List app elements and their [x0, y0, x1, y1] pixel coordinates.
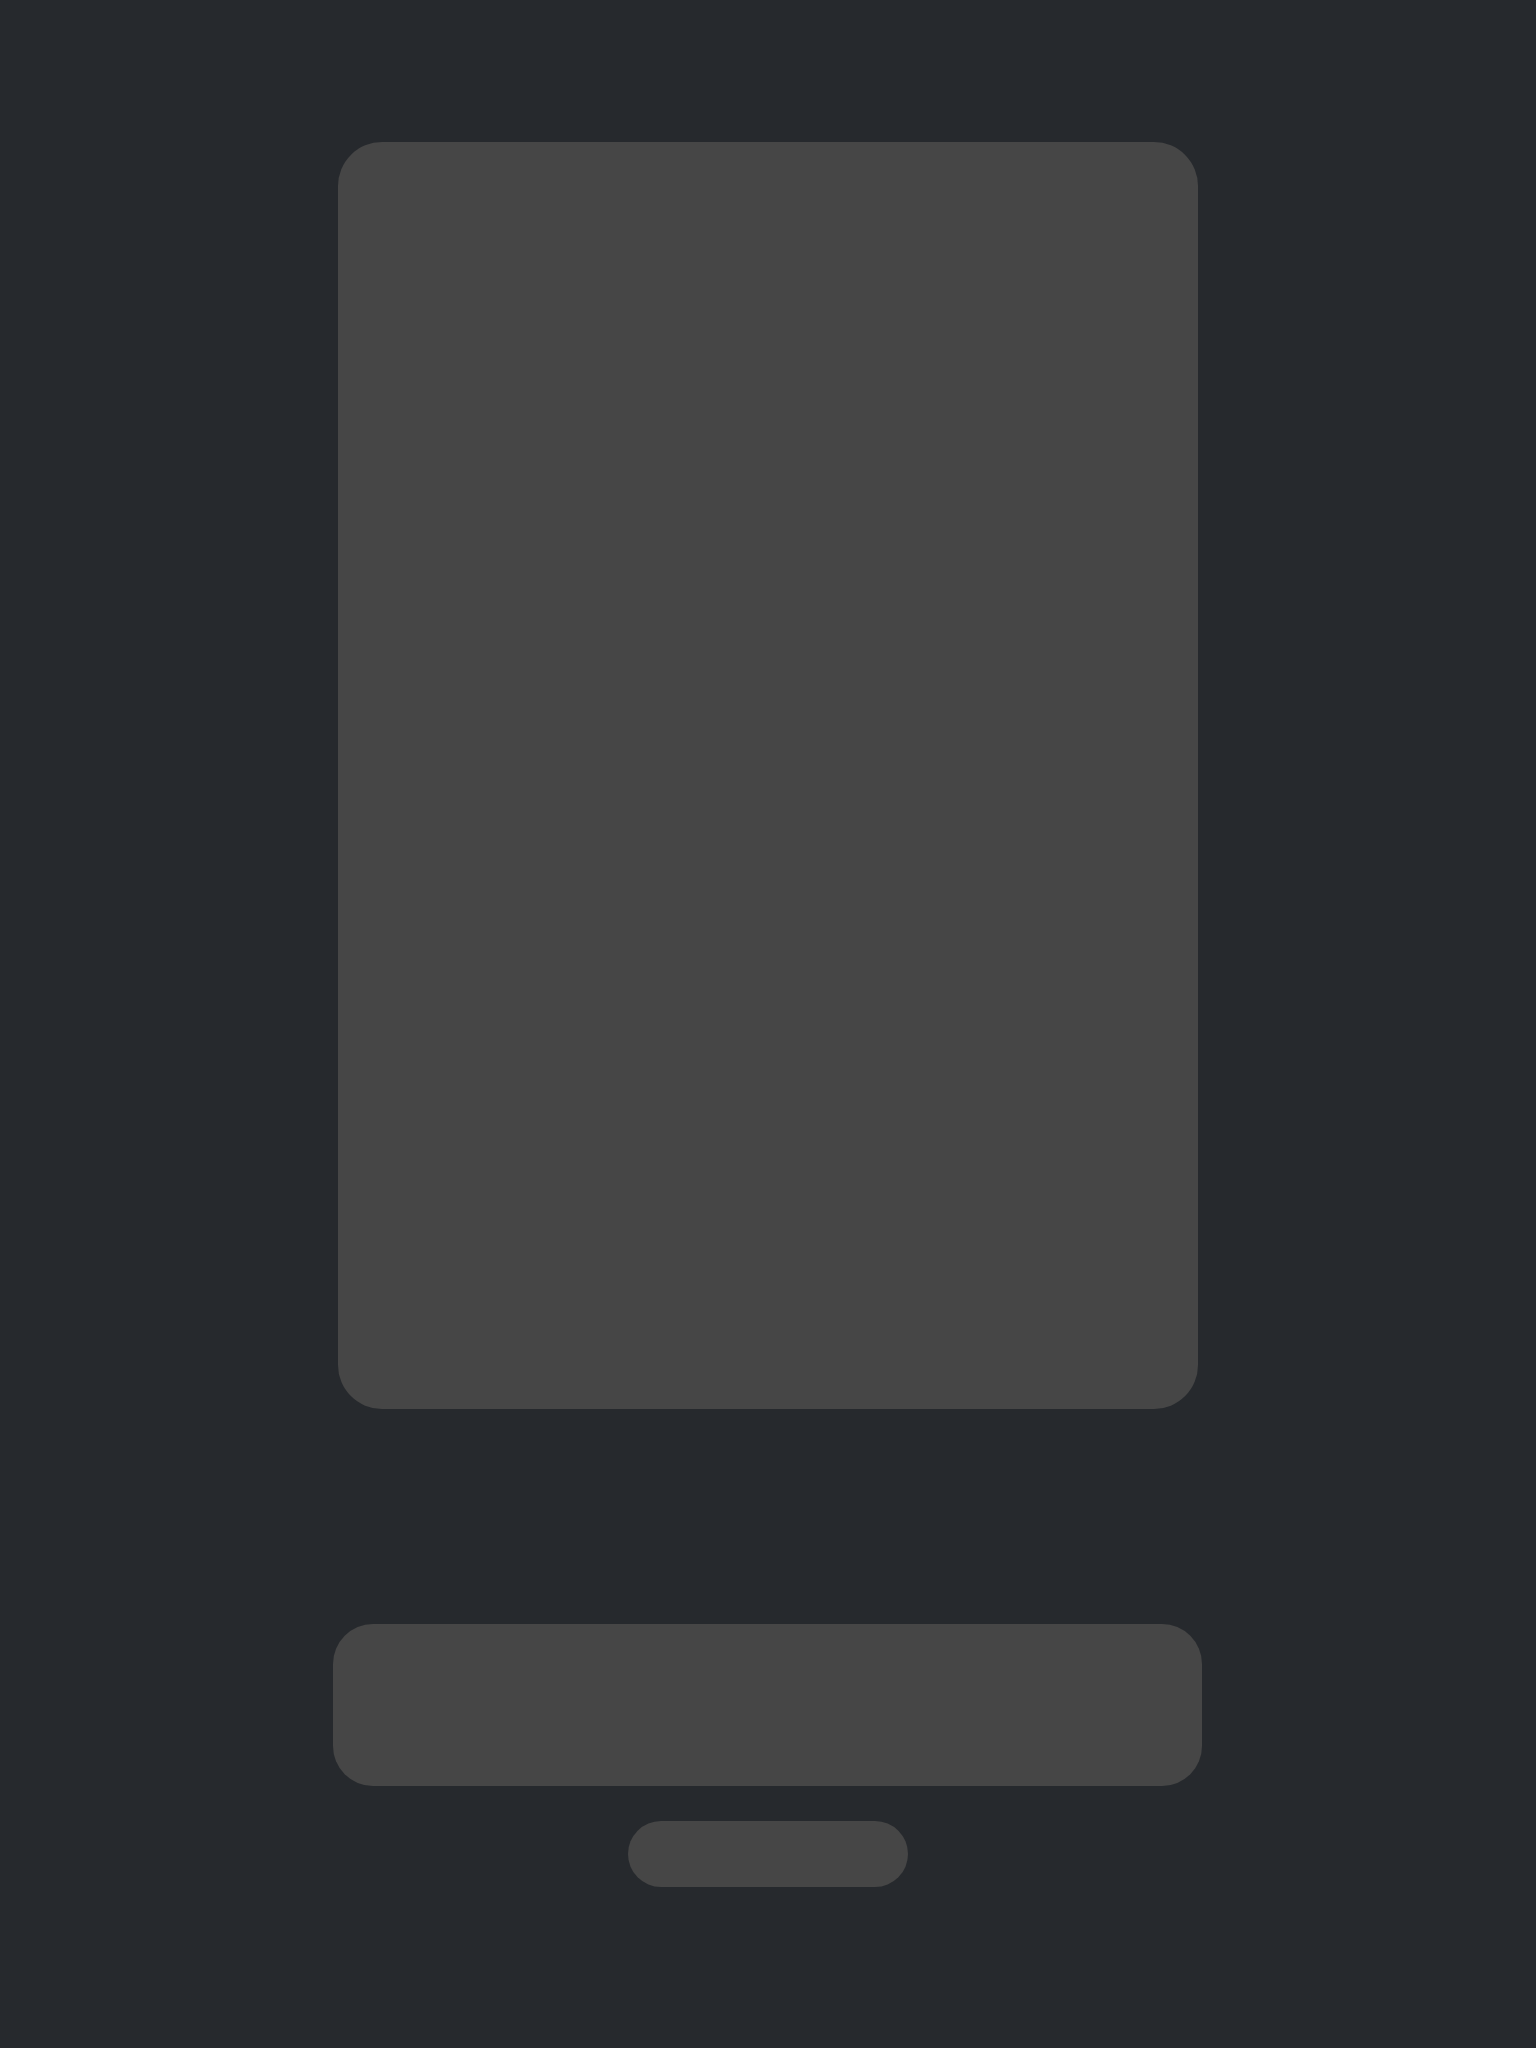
button[interactable]: Action placeholder	[628, 1821, 908, 1887]
button[interactable]: Text placeholder	[333, 1624, 1202, 1786]
